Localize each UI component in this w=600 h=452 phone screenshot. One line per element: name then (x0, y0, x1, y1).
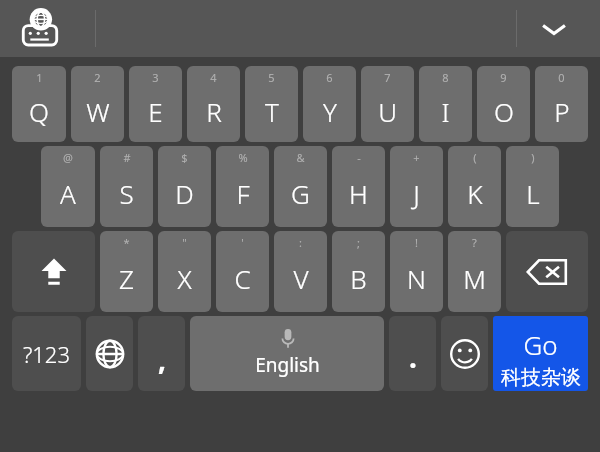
staticText: English (255, 352, 320, 378)
button[interactable]: 5 (245, 66, 298, 142)
button[interactable]: : (274, 231, 327, 312)
staticText: ( (473, 150, 477, 165)
button[interactable]: @ (41, 146, 95, 227)
staticText: S (119, 176, 134, 211)
staticText: 3 (152, 70, 159, 85)
staticText: ? (472, 235, 477, 250)
button[interactable]: + (390, 146, 443, 227)
staticText: ?123 (23, 339, 70, 369)
staticText: 6 (326, 70, 333, 85)
staticText: 5 (268, 70, 275, 85)
button[interactable]: ; (332, 231, 385, 312)
staticText: % (238, 150, 248, 165)
button[interactable]: 0 (535, 66, 588, 142)
staticText: K (467, 176, 483, 211)
staticText: F (236, 176, 250, 211)
staticText: D (175, 176, 194, 211)
staticText: A (60, 176, 76, 211)
staticText: * (123, 235, 130, 250)
staticText: E (148, 94, 163, 129)
staticText: ! (415, 235, 418, 250)
staticText: : (299, 235, 302, 250)
staticText: X (177, 261, 192, 296)
staticText: ' (241, 235, 244, 250)
button[interactable]: Switch input method (18, 8, 62, 50)
button[interactable]: ) (506, 146, 559, 227)
staticText: W (86, 94, 110, 129)
staticText: L (526, 176, 540, 211)
staticText: 2 (94, 70, 101, 85)
staticText: $ (181, 150, 188, 165)
button[interactable]: Go (493, 316, 588, 391)
staticText: 0 (558, 70, 565, 85)
button[interactable]: ! (390, 231, 443, 312)
staticText: + (413, 150, 420, 165)
staticText: M (463, 261, 486, 296)
staticText: Z (119, 261, 134, 296)
button[interactable]: Change language (86, 316, 133, 391)
button[interactable]: - (332, 146, 385, 227)
button[interactable]: 8 (419, 66, 472, 142)
button[interactable]: ' (216, 231, 269, 312)
staticText: R (206, 94, 222, 129)
button[interactable]: 6 (303, 66, 356, 142)
staticText: V (293, 261, 309, 296)
button[interactable]: 9 (477, 66, 530, 142)
button[interactable]: 7 (361, 66, 414, 142)
button[interactable]: . (389, 316, 436, 391)
button[interactable]: ( (448, 146, 501, 227)
button[interactable]: % (216, 146, 269, 227)
staticText: T (265, 94, 279, 129)
staticText: ; (357, 235, 360, 250)
button[interactable]: English (190, 316, 384, 391)
staticText: J (413, 176, 420, 211)
staticText: - (357, 150, 361, 165)
staticText: 科技杂谈 (501, 365, 581, 390)
staticText: @ (63, 150, 73, 165)
staticText: # (123, 150, 131, 165)
staticText: C (234, 261, 251, 296)
staticText: G (291, 176, 310, 211)
button[interactable]: 4 (187, 66, 240, 142)
staticText: O (494, 94, 514, 129)
staticText: H (349, 176, 368, 211)
button[interactable]: # (100, 146, 153, 227)
button[interactable]: ?123 (12, 316, 81, 391)
staticText: N (407, 261, 426, 296)
button[interactable]: , (138, 316, 185, 391)
staticText: B (350, 261, 367, 296)
button[interactable]: Shift (12, 231, 95, 312)
staticText: 8 (442, 70, 449, 85)
staticText: P (554, 94, 570, 129)
staticText: , (158, 340, 166, 378)
button[interactable]: 2 (71, 66, 124, 142)
button[interactable]: ? (448, 231, 501, 312)
staticText: 9 (500, 70, 507, 85)
staticText: Go (523, 327, 558, 362)
button[interactable]: $ (158, 146, 211, 227)
staticText: I (441, 94, 450, 129)
button[interactable]: " (158, 231, 211, 312)
staticText: 1 (36, 70, 43, 85)
button[interactable]: & (274, 146, 327, 227)
button[interactable]: Hide keyboard (530, 10, 578, 48)
button[interactable]: Backspace (506, 231, 588, 312)
staticText: . (409, 338, 417, 376)
staticText: 4 (210, 70, 217, 85)
button[interactable]: * (100, 231, 153, 312)
staticText: Y (323, 94, 337, 129)
staticText: " (182, 235, 187, 250)
staticText: ) (531, 150, 535, 165)
staticText: Q (29, 94, 49, 129)
button[interactable]: 1 (12, 66, 66, 142)
staticText: 7 (384, 70, 391, 85)
staticText: & (296, 150, 305, 165)
button[interactable]: 3 (129, 66, 182, 142)
button[interactable]: Emoji (441, 316, 488, 391)
staticText: U (378, 94, 397, 129)
